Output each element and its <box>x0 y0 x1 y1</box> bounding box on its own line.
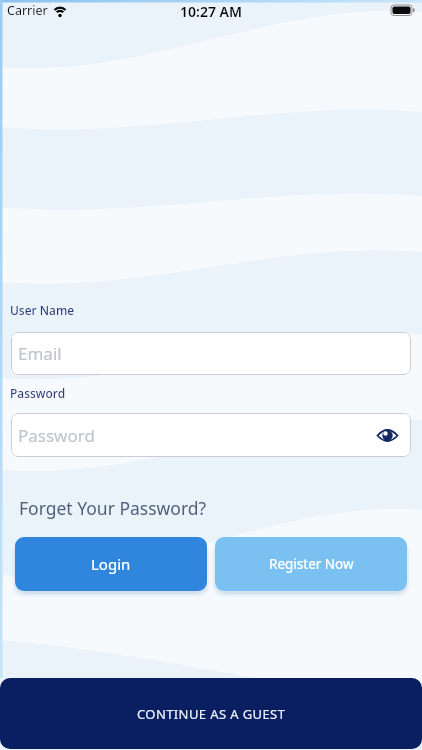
staticText: Password <box>10 385 66 401</box>
button[interactable]: Password <box>11 413 411 457</box>
staticText: CONTINUE AS A GUEST <box>137 705 286 723</box>
staticText: Password <box>18 424 95 447</box>
staticText: Carrier <box>7 2 48 19</box>
staticText: Login <box>91 554 131 574</box>
button[interactable]: Login <box>15 537 207 591</box>
button[interactable]: Email <box>11 332 411 375</box>
button[interactable]: Register Now <box>215 537 407 591</box>
button[interactable]: Forget Your Password? <box>19 496 207 520</box>
staticText: 10:27 AM <box>180 2 242 21</box>
staticText: Email <box>18 342 62 365</box>
button[interactable]: CONTINUE AS A GUEST <box>0 678 422 749</box>
staticText: Register Now <box>269 555 354 573</box>
staticText: User Name <box>10 302 75 318</box>
